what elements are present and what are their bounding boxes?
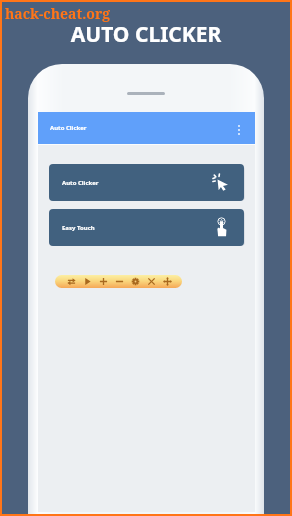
button[interactable]: shuffle [63, 275, 79, 288]
button[interactable]: Easy Touch [49, 209, 244, 246]
staticText: AUTO CLICKER [0, 20, 292, 49]
staticText: Auto Clicker [62, 179, 99, 187]
staticText: Auto Clicker [50, 124, 87, 132]
button[interactable]: plus [95, 275, 111, 288]
button[interactable]: More options [230, 121, 248, 139]
button[interactable]: move [159, 275, 175, 288]
button[interactable]: Auto Clicker [49, 164, 244, 201]
staticText: hack-cheat.org [5, 4, 111, 23]
button[interactable]: play [79, 275, 95, 288]
button[interactable]: minus [111, 275, 127, 288]
button[interactable]: close [143, 275, 159, 288]
staticText: Easy Touch [62, 224, 95, 232]
button[interactable]: gear [127, 275, 143, 288]
